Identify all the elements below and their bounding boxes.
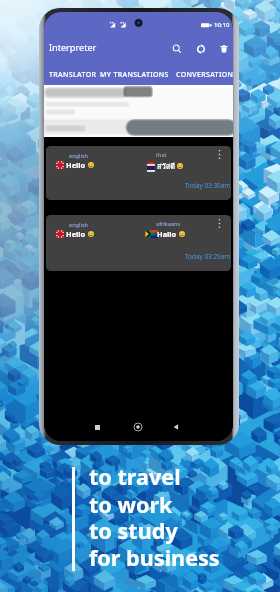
staticText: CONVERSATION — [176, 70, 233, 80]
button[interactable]: Back — [168, 419, 184, 435]
staticText: MY TRANSLATIONS — [100, 70, 169, 80]
staticText: 10:10 — [214, 21, 230, 29]
staticText: Interpreter — [49, 41, 97, 53]
button[interactable]: TRANSLATOR — [44, 61, 102, 87]
staticText: Hallo — [157, 229, 177, 239]
staticText: TRANSLATOR — [49, 70, 97, 80]
button[interactable]: english — [46, 215, 231, 271]
staticText: Hello — [66, 229, 86, 239]
staticText: thai — [156, 151, 167, 159]
staticText: Hello — [66, 160, 86, 170]
staticText: for business — [89, 543, 220, 572]
staticText: afrikaans — [156, 220, 181, 228]
button[interactable]: More options — [213, 216, 226, 231]
button[interactable]: Home — [130, 419, 146, 435]
button[interactable]: More options — [213, 147, 226, 162]
button[interactable]: english — [46, 146, 231, 200]
staticText: to study — [89, 516, 178, 545]
staticText: english — [69, 152, 89, 160]
button[interactable]: MY TRANSLATIONS — [99, 61, 169, 87]
button[interactable]: Delete all — [216, 41, 232, 57]
button[interactable]: CONVERSATION — [170, 61, 233, 87]
staticText: สวัสดี — [157, 160, 175, 172]
staticText: english — [69, 221, 89, 229]
button[interactable]: Recent apps — [89, 419, 105, 435]
staticText: to work — [89, 490, 173, 519]
staticText: Today 03:30am — [185, 181, 231, 190]
button[interactable]: Search — [169, 41, 185, 57]
staticText: to travel — [89, 462, 181, 491]
button[interactable]: Swap languages — [193, 41, 209, 57]
staticText: Today 03:29am — [185, 252, 231, 261]
